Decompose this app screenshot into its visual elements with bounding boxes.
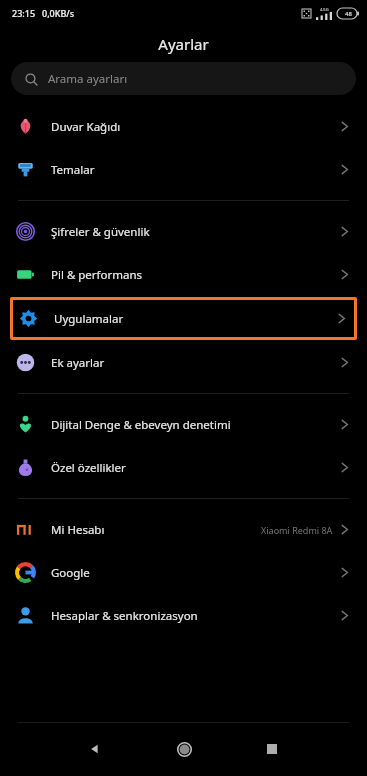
button[interactable]: Mi Hesabı <box>0 508 367 551</box>
staticText: 48 <box>345 10 352 18</box>
staticText: 4.5G <box>320 7 329 12</box>
staticText: Xiaomi Redmi 8A <box>261 524 333 536</box>
button[interactable]: Temalar <box>0 148 367 191</box>
staticText: Temalar <box>51 162 95 178</box>
button[interactable]: Özel özellikler <box>0 446 367 489</box>
button[interactable]: Back <box>78 732 112 766</box>
button[interactable]: Arama ayarları <box>11 62 356 95</box>
staticText: Ek ayarlar <box>51 355 105 371</box>
staticText: Şifreler & güvenlik <box>51 224 150 240</box>
button[interactable]: Recent apps <box>255 732 289 766</box>
staticText: 23:15 <box>12 7 36 19</box>
button[interactable]: Dijital Denge & ebeveyn denetimi <box>0 403 367 446</box>
staticText: Özel özellikler <box>51 460 126 476</box>
staticText: Google <box>51 565 90 581</box>
button[interactable]: Duvar Kağıdı <box>0 105 367 148</box>
button[interactable]: Pil & performans <box>0 253 367 296</box>
button[interactable]: Ek ayarlar <box>0 341 367 384</box>
button[interactable]: Home <box>167 732 201 766</box>
staticText: Pil & performans <box>51 267 143 283</box>
staticText: Mi Hesabı <box>51 522 105 538</box>
staticText: Uygulamalar <box>54 311 124 327</box>
button[interactable]: Google <box>0 551 367 594</box>
button[interactable]: Şifreler & güvenlik <box>0 210 367 253</box>
staticText: Hesaplar & senkronizasyon <box>51 608 198 624</box>
staticText: 0,0KB/s <box>42 7 75 19</box>
staticText: Dijital Denge & ebeveyn denetimi <box>51 417 231 433</box>
button[interactable]: Hesaplar & senkronizasyon <box>0 594 367 637</box>
staticText: Duvar Kağıdı <box>51 119 121 135</box>
staticText: Arama ayarları <box>48 71 128 87</box>
staticText: Ayarlar <box>158 34 209 54</box>
button[interactable]: Uygulamalar <box>13 300 354 337</box>
